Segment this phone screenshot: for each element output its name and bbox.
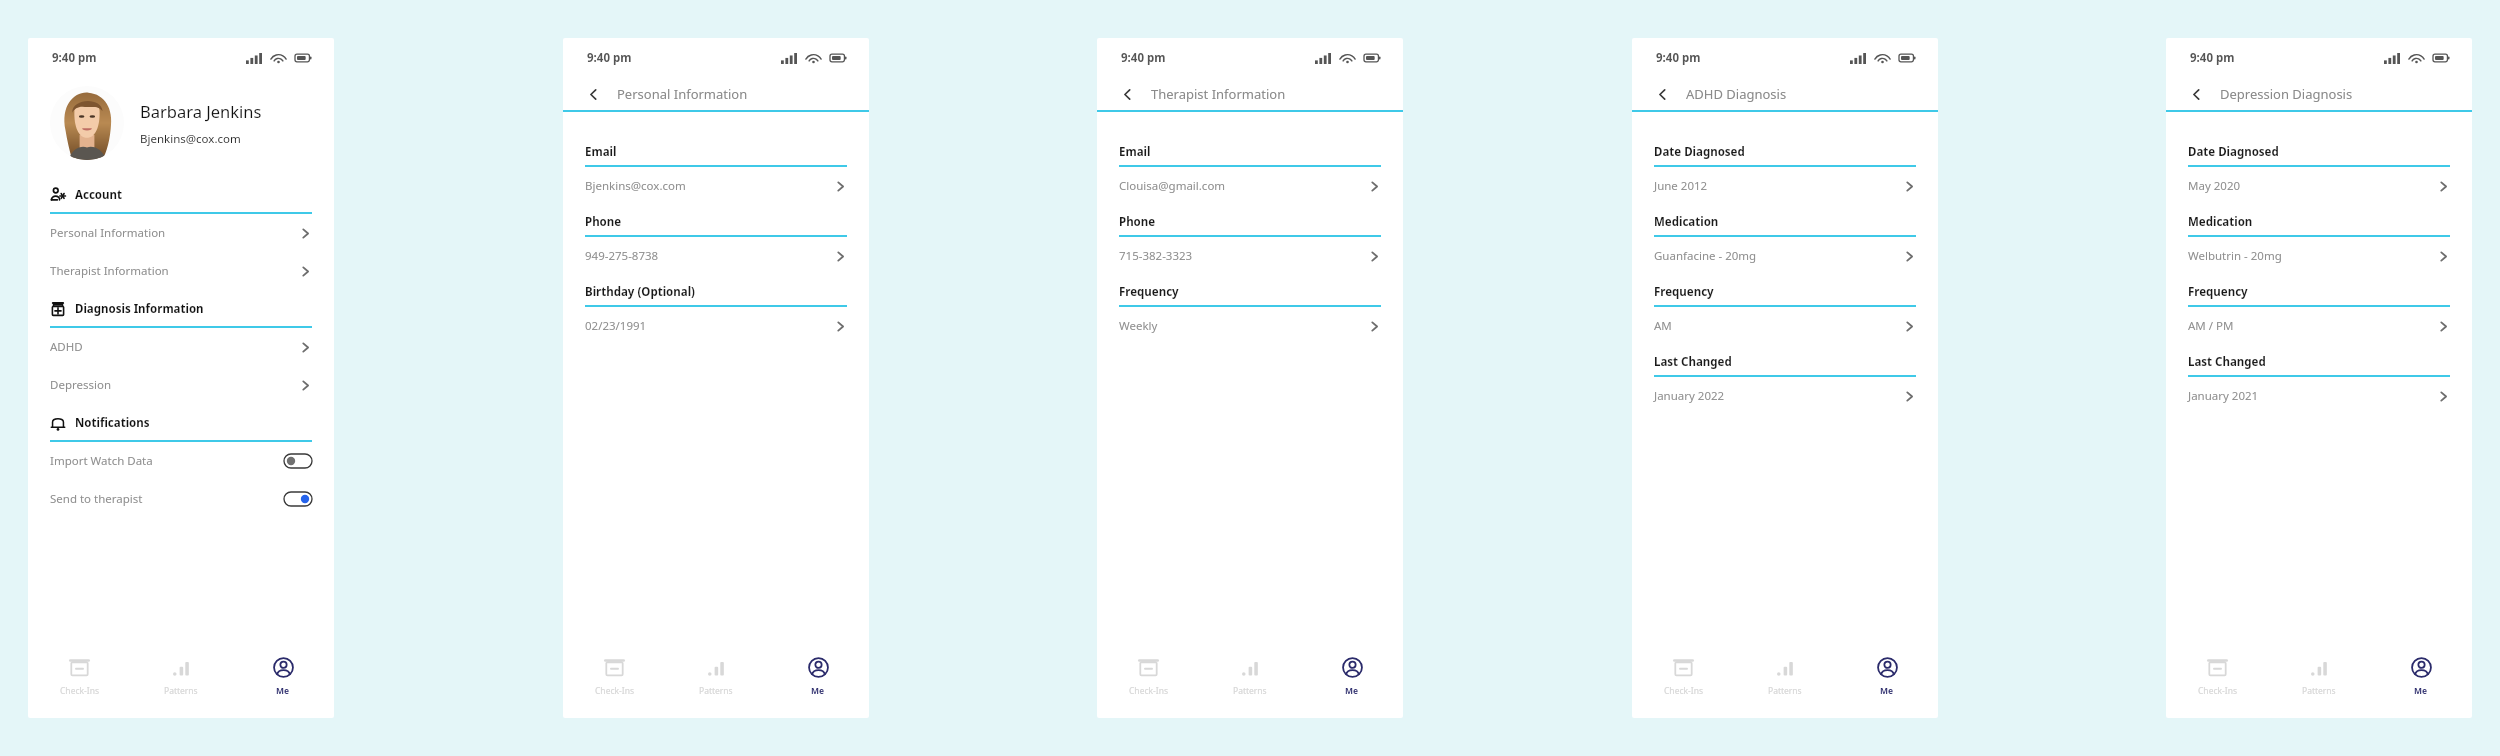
- staticText: Email: [585, 144, 617, 160]
- staticText: 9:40 pm: [1121, 50, 1166, 66]
- staticText: 949-275-8738: [585, 248, 659, 264]
- button[interactable]: 949-275-8738: [563, 237, 869, 275]
- staticText: Personal Information: [617, 85, 748, 103]
- staticText: 02/23/1991: [585, 318, 647, 334]
- staticText: Welbutrin - 20mg: [2188, 248, 2282, 264]
- staticText: Bjenkins@cox.com: [140, 131, 241, 147]
- button[interactable]: Personal Information: [28, 214, 334, 252]
- staticText: January 2022: [1654, 388, 1725, 404]
- button[interactable]: May 2020: [2166, 167, 2472, 205]
- staticText: Check-Ins: [2198, 685, 2237, 697]
- staticText: ADHD: [50, 339, 83, 355]
- staticText: 9:40 pm: [587, 50, 632, 66]
- staticText: AM: [1654, 318, 1672, 334]
- staticText: Patterns: [164, 685, 198, 697]
- staticText: Me: [2414, 685, 2428, 697]
- staticText: ADHD Diagnosis: [1686, 85, 1787, 103]
- staticText: Email: [1119, 144, 1151, 160]
- button[interactable]: Patterns: [2268, 644, 2370, 710]
- button[interactable]: Clouisa@gmail.com: [1097, 167, 1403, 205]
- button[interactable]: 02/23/1991: [563, 307, 869, 345]
- button[interactable]: Me: [1836, 644, 1938, 710]
- staticText: 9:40 pm: [52, 50, 97, 66]
- button[interactable]: Me: [1301, 644, 1403, 710]
- staticText: Phone: [1119, 214, 1156, 230]
- staticText: 9:40 pm: [2190, 50, 2235, 66]
- staticText: Me: [1880, 685, 1894, 697]
- staticText: Medication: [2188, 214, 2253, 230]
- button[interactable]: Check-Ins: [28, 644, 130, 710]
- staticText: Date Diagnosed: [1654, 144, 1745, 160]
- staticText: Send to therapist: [50, 491, 143, 507]
- button[interactable]: Check-Ins: [1632, 644, 1734, 710]
- button[interactable]: Patterns: [130, 644, 232, 710]
- button[interactable]: AM / PM: [2166, 307, 2472, 345]
- staticText: Depression Diagnosis: [2220, 85, 2353, 103]
- button[interactable]: Guanfacine - 20mg: [1632, 237, 1938, 275]
- button[interactable]: Back: [581, 82, 605, 106]
- staticText: 715-382-3323: [1119, 248, 1193, 264]
- staticText: AM / PM: [2188, 318, 2234, 334]
- staticText: Me: [811, 685, 825, 697]
- staticText: June 2012: [1654, 178, 1708, 194]
- button[interactable]: January 2021: [2166, 377, 2472, 415]
- button[interactable]: Me: [2370, 644, 2472, 710]
- button[interactable]: Back: [1115, 82, 1139, 106]
- button[interactable]: Check-Ins: [2166, 644, 2268, 710]
- staticText: Import Watch Data: [50, 453, 153, 469]
- staticText: Date Diagnosed: [2188, 144, 2279, 160]
- button[interactable]: Me: [232, 644, 334, 710]
- staticText: Barbara Jenkins: [140, 100, 262, 122]
- staticText: Bjenkins@cox.com: [585, 178, 686, 194]
- button[interactable]: Me: [767, 644, 869, 710]
- staticText: May 2020: [2188, 178, 2241, 194]
- staticText: Frequency: [1119, 284, 1179, 300]
- staticText: January 2021: [2188, 388, 2259, 404]
- staticText: Patterns: [2302, 685, 2336, 697]
- staticText: Check-Ins: [1664, 685, 1703, 697]
- staticText: Personal Information: [50, 225, 166, 241]
- button[interactable]: Welbutrin - 20mg: [2166, 237, 2472, 275]
- button[interactable]: 715-382-3323: [1097, 237, 1403, 275]
- button[interactable]: Patterns: [665, 644, 767, 710]
- staticText: Frequency: [2188, 284, 2248, 300]
- staticText: Account: [75, 187, 122, 203]
- staticText: Me: [1345, 685, 1359, 697]
- staticText: Therapist Information: [50, 263, 169, 279]
- staticText: Me: [276, 685, 290, 697]
- staticText: Check-Ins: [60, 685, 99, 697]
- staticText: 9:40 pm: [1656, 50, 1701, 66]
- button[interactable]: ADHD: [28, 328, 334, 366]
- staticText: Last Changed: [2188, 354, 2266, 370]
- button[interactable]: Therapist Information: [28, 252, 334, 290]
- button[interactable]: June 2012: [1632, 167, 1938, 205]
- staticText: Last Changed: [1654, 354, 1732, 370]
- button[interactable]: Bjenkins@cox.com: [563, 167, 869, 205]
- staticText: Patterns: [1233, 685, 1267, 697]
- button[interactable]: Depression: [28, 366, 334, 404]
- button[interactable]: Patterns: [1734, 644, 1836, 710]
- staticText: Diagnosis Information: [75, 301, 204, 317]
- staticText: Patterns: [699, 685, 733, 697]
- button[interactable]: Patterns: [1199, 644, 1301, 710]
- button[interactable]: AM: [1632, 307, 1938, 345]
- staticText: Weekly: [1119, 318, 1158, 334]
- button[interactable]: Send to therapist: [28, 480, 334, 518]
- button[interactable]: January 2022: [1632, 377, 1938, 415]
- staticText: Depression: [50, 377, 112, 393]
- staticText: Phone: [585, 214, 622, 230]
- staticText: Therapist Information: [1151, 85, 1286, 103]
- staticText: Patterns: [1768, 685, 1802, 697]
- staticText: Medication: [1654, 214, 1719, 230]
- button[interactable]: Import Watch Data: [28, 442, 334, 480]
- staticText: Guanfacine - 20mg: [1654, 248, 1757, 264]
- button[interactable]: Check-Ins: [563, 644, 665, 710]
- staticText: Clouisa@gmail.com: [1119, 178, 1226, 194]
- staticText: Check-Ins: [1129, 685, 1168, 697]
- button[interactable]: Weekly: [1097, 307, 1403, 345]
- staticText: Notifications: [75, 415, 150, 431]
- button[interactable]: Back: [2184, 82, 2208, 106]
- staticText: Check-Ins: [595, 685, 634, 697]
- button[interactable]: Back: [1650, 82, 1674, 106]
- button[interactable]: Check-Ins: [1097, 644, 1199, 710]
